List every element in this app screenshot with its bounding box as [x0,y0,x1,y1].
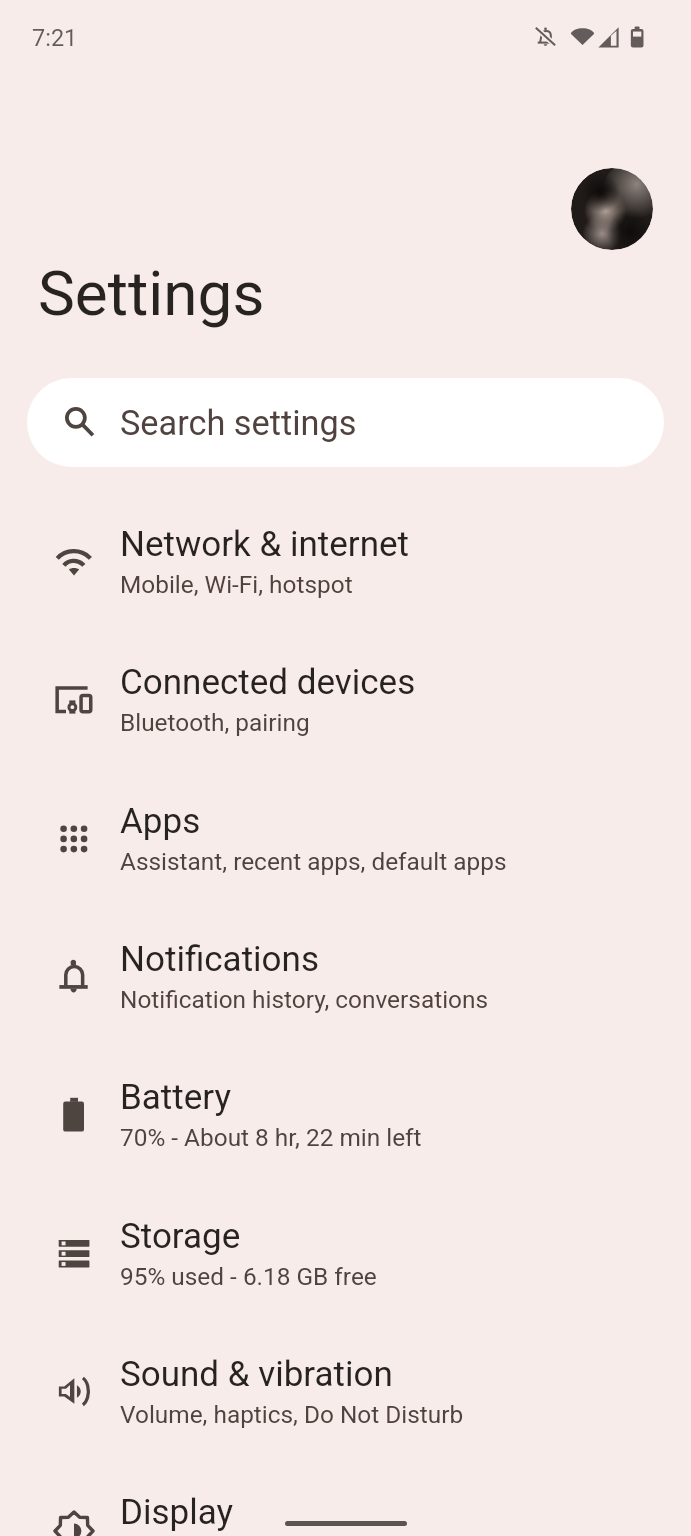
staticText: Sound & vibration [120,1354,393,1394]
staticText: 95% used - 6.18 GB free [120,1263,377,1291]
staticText: Bluetooth, pairing [120,709,310,737]
button[interactable]: Notifications [0,916,691,1054]
button[interactable]: Display [0,1469,691,1536]
button[interactable]: Storage [0,1193,691,1331]
staticText: Network & internet [120,524,410,564]
button[interactable]: Battery [0,1054,691,1192]
staticText: Storage [120,1216,241,1256]
staticText: Settings [38,256,265,330]
staticText: Notifications [120,939,319,979]
button[interactable]: Network & internet [0,501,691,639]
staticText: Connected devices [120,662,416,702]
button[interactable]: Account [571,168,653,250]
staticText: Notification history, conversations [120,986,489,1014]
staticText: Battery [120,1077,232,1117]
staticText: Volume, haptics, Do Not Disturb [120,1401,464,1429]
staticText: Mobile, Wi-Fi, hotspot [120,571,353,599]
button[interactable]: Apps [0,778,691,916]
button[interactable]: Connected devices [0,639,691,777]
button[interactable]: Search settings [27,378,664,467]
staticText: Apps [120,801,201,841]
button[interactable]: Sound & vibration [0,1331,691,1469]
staticText: Assistant, recent apps, default apps [120,848,507,876]
staticText: 7:21 [32,24,78,52]
staticText: Search settings [120,403,357,443]
staticText: 70% - About 8 hr, 22 min left [120,1124,422,1152]
staticText: Display [120,1492,234,1532]
